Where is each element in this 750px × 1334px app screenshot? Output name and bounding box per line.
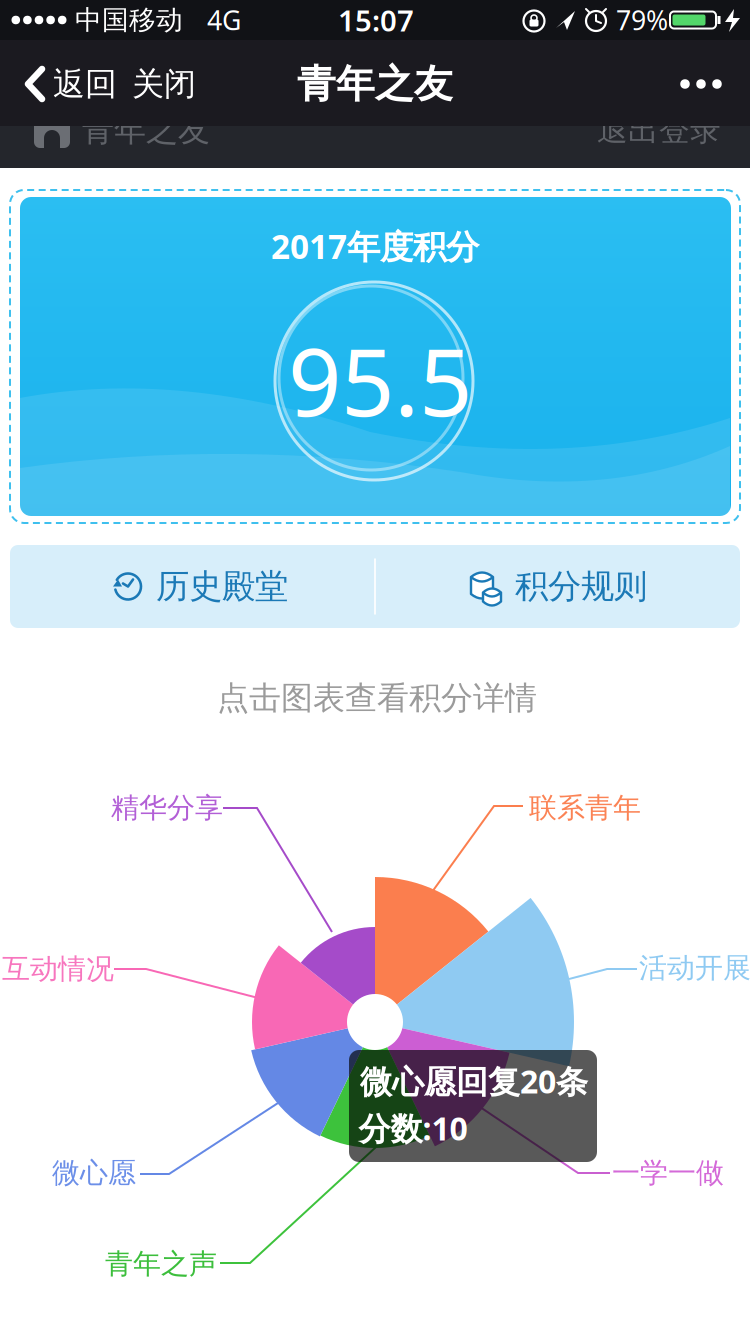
staticText: 青年之友	[297, 60, 453, 108]
staticText: 关闭	[132, 64, 196, 104]
staticText: 青年之友	[82, 110, 210, 150]
staticText: 互动情况	[2, 952, 114, 986]
button[interactable]: 积分规则	[393, 545, 723, 628]
staticText: 15:07	[338, 0, 414, 39]
staticText: 微心愿	[52, 1156, 136, 1190]
staticText: 点击图表查看积分详情	[217, 678, 537, 718]
button[interactable]: 积分图表	[145, 792, 605, 1252]
staticText: 退出登录	[597, 111, 721, 149]
staticText: 返回	[53, 64, 117, 104]
staticText: 积分规则	[515, 566, 647, 607]
staticText: 青年之声	[105, 1247, 217, 1281]
staticText: 活动开展	[639, 951, 750, 985]
button[interactable]: 退出登录	[597, 111, 721, 149]
staticText: 79%	[616, 2, 668, 38]
staticText: 联系青年	[529, 791, 641, 825]
button[interactable]: 返回	[25, 64, 117, 104]
button[interactable]: 历史殿堂	[35, 545, 365, 628]
staticText: 分数:10	[358, 1107, 467, 1149]
staticText: 微心愿回复20条	[360, 1060, 588, 1102]
staticText: 一学一做	[612, 1156, 724, 1190]
staticText: 历史殿堂	[156, 566, 288, 607]
staticText: 精华分享	[111, 791, 223, 825]
staticText: 95.5	[288, 318, 472, 442]
button[interactable]: 关闭	[132, 64, 196, 104]
staticText: 2017年度积分	[271, 224, 479, 268]
staticText: 4G	[207, 2, 241, 38]
staticText: 中国移动	[75, 4, 183, 36]
button[interactable]: 更多	[680, 79, 722, 89]
